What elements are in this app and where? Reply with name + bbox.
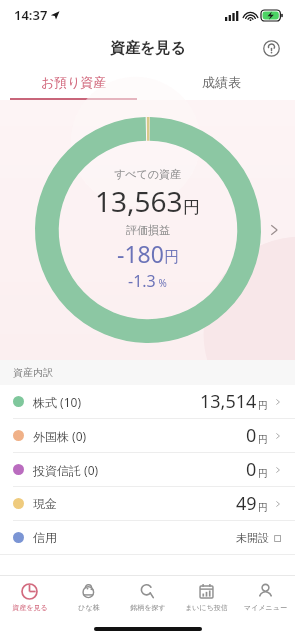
staticText: 資産を見る <box>110 39 186 58</box>
button[interactable]: マイメニュー <box>236 576 295 618</box>
staticText: ひな株 <box>78 603 100 612</box>
staticText: 49 <box>236 491 257 516</box>
staticText: 投資信託 (0) <box>33 462 99 478</box>
staticText: 円 <box>183 197 200 218</box>
staticText: 株式 (10) <box>33 394 82 410</box>
button[interactable]: Next <box>259 215 289 245</box>
staticText: 13,514 <box>200 389 257 414</box>
button[interactable]: 資産を見る <box>0 576 59 618</box>
staticText: すべての資産 <box>114 167 182 181</box>
staticText: 成績表 <box>202 74 241 90</box>
button[interactable]: Help <box>257 34 285 62</box>
staticText: 円 <box>258 433 268 446</box>
staticText: 資産を見る <box>12 603 48 612</box>
button[interactable]: ひな株 <box>59 576 118 618</box>
staticText: 13,563 <box>95 182 183 220</box>
staticText: 円 <box>258 399 268 412</box>
staticText: 資産内訳 <box>13 366 53 379</box>
staticText: 0 <box>246 423 257 448</box>
staticText: まいにち投信 <box>185 603 228 612</box>
button[interactable]: 投資信託 (0) <box>0 453 295 486</box>
staticText: 未開設 <box>236 531 269 545</box>
button[interactable]: 銘柄を探す <box>118 576 177 618</box>
staticText: -180 <box>117 238 164 269</box>
staticText: 円 <box>258 501 268 514</box>
staticText: 外国株 (0) <box>33 428 87 444</box>
button[interactable]: 信用 <box>0 521 295 554</box>
button[interactable]: 現金 <box>0 487 295 520</box>
staticText: 信用 <box>33 530 57 545</box>
button[interactable]: すべての資産 <box>0 100 295 360</box>
button[interactable]: まいにち投信 <box>177 576 236 618</box>
staticText: 円 <box>164 248 179 267</box>
staticText: 14:37 <box>14 6 48 24</box>
staticText: お預り資産 <box>41 74 107 90</box>
button[interactable]: 外国株 (0) <box>0 419 295 452</box>
staticText: 評価損益 <box>126 223 170 237</box>
staticText: 0 <box>246 457 257 482</box>
staticText: 銘柄を探す <box>130 603 166 612</box>
staticText: -1.3 <box>128 270 156 292</box>
staticText: マイメニュー <box>244 603 287 612</box>
staticText: % <box>156 276 167 290</box>
button[interactable]: 成績表 <box>147 66 295 98</box>
staticText: 現金 <box>33 496 57 511</box>
staticText: 円 <box>258 467 268 480</box>
button[interactable]: お預り資産 <box>0 66 147 98</box>
button[interactable]: 株式 (10) <box>0 385 295 418</box>
